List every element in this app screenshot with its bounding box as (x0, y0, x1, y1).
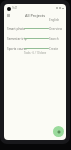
staticText: Tasks · 6 / 10 done (24, 51, 47, 55)
staticText: All Projects (25, 13, 46, 18)
staticText: Smart photo (7, 27, 26, 31)
button[interactable]: Semester trip (4, 34, 66, 43)
staticText: Create (49, 47, 59, 51)
staticText: 9:41 (12, 6, 18, 10)
button[interactable]: Sports course (4, 44, 66, 53)
staticText: Sports course (7, 47, 27, 51)
staticText: Semester trip (7, 37, 27, 41)
button[interactable]: Smart photo (4, 24, 66, 33)
staticText: English (49, 18, 60, 22)
staticText: Search (49, 37, 59, 41)
button[interactable]: Menu (5, 12, 11, 18)
staticText: Overview (49, 27, 63, 31)
button[interactable]: Add project (53, 126, 64, 137)
